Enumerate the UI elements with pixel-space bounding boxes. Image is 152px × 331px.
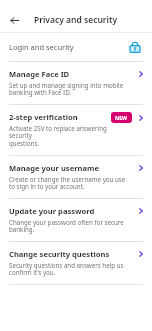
staticText: Login and security bbox=[9, 42, 127, 52]
staticText: Change your password often for secure ba… bbox=[9, 218, 124, 234]
staticText: Set up and manage signing into mobile ba… bbox=[9, 81, 124, 97]
staticText: NEW bbox=[115, 114, 128, 121]
other: Locked bbox=[127, 39, 143, 55]
staticText: Change security questions bbox=[9, 249, 110, 259]
button[interactable]: Update your password bbox=[0, 199, 152, 241]
staticText: Privacy and security bbox=[34, 14, 118, 26]
staticText: Activate 2SV to replace answering securi… bbox=[9, 124, 111, 148]
button[interactable]: Change security questions bbox=[0, 242, 152, 284]
staticText: Manage your username bbox=[9, 163, 99, 173]
staticText: 2-step verification bbox=[9, 112, 78, 122]
button[interactable]: Back bbox=[4, 10, 24, 30]
staticText: Create or change the username you use to… bbox=[9, 175, 126, 191]
button[interactable]: Manage your username bbox=[0, 156, 152, 198]
button[interactable]: 2-step verification bbox=[0, 105, 152, 155]
button[interactable]: Manage Face ID bbox=[0, 62, 152, 104]
staticText: Security questions and answers help us c… bbox=[9, 261, 124, 277]
staticText: Update your password bbox=[9, 206, 95, 216]
button[interactable]: Login and security bbox=[0, 33, 152, 61]
staticText: Manage Face ID bbox=[9, 69, 70, 79]
